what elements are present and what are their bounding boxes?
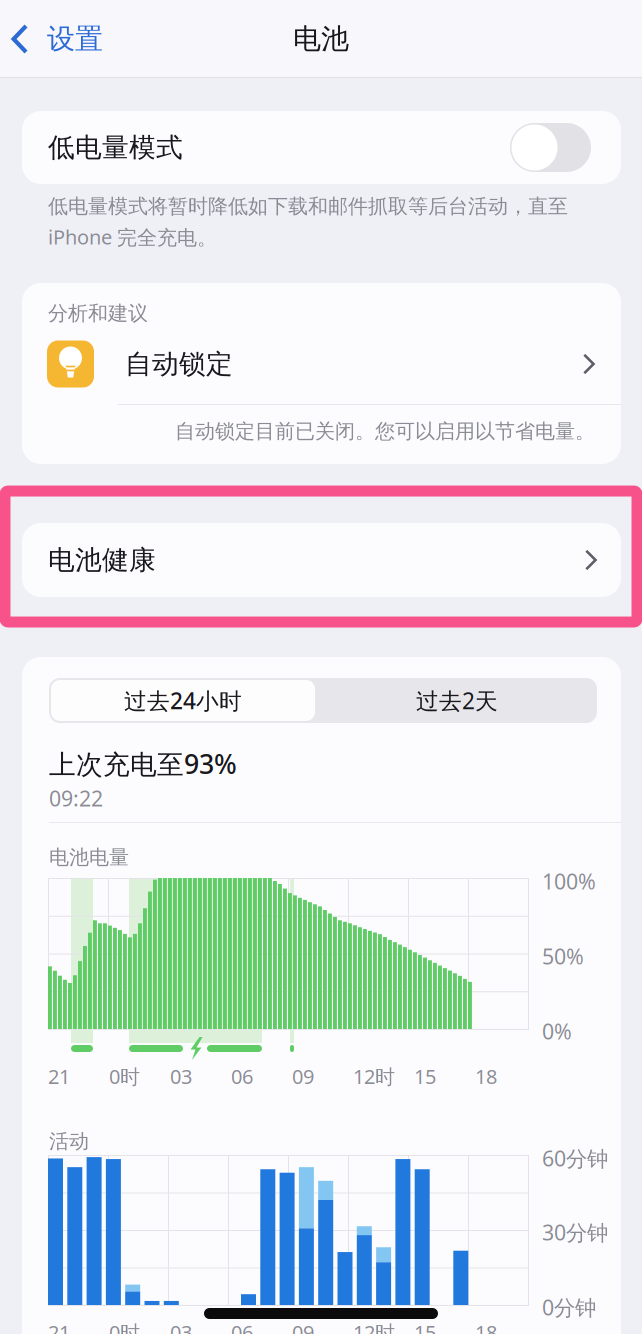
staticText: 分析和建议 bbox=[48, 301, 148, 326]
staticText: 12时 bbox=[353, 1063, 395, 1090]
staticText: 60分钟 bbox=[542, 1144, 608, 1172]
staticText: 上次充电至93% bbox=[49, 746, 237, 781]
staticText: 0分钟 bbox=[542, 1293, 596, 1321]
staticText: 09:22 bbox=[49, 784, 103, 812]
staticText: 09 bbox=[292, 1063, 314, 1090]
staticText: 电池 bbox=[293, 22, 349, 56]
staticText: 活动 bbox=[49, 1129, 89, 1154]
staticText: 过去2天 bbox=[416, 685, 498, 715]
staticText: 15 bbox=[414, 1063, 436, 1090]
button[interactable]: 低电量模式 bbox=[22, 111, 621, 184]
staticText: 21 bbox=[48, 1319, 70, 1334]
button[interactable]: 电池健康 bbox=[22, 523, 621, 597]
staticText: 03 bbox=[170, 1319, 192, 1334]
staticText: 电池电量 bbox=[49, 845, 129, 870]
staticText: 设置 bbox=[47, 22, 103, 56]
staticText: 50% bbox=[542, 942, 584, 970]
staticText: 过去24小时 bbox=[124, 685, 242, 715]
button[interactable]: 自动锁定 bbox=[22, 283, 621, 355]
staticText: 0时 bbox=[109, 1063, 140, 1090]
staticText: 自动锁定目前已关闭。您可以启用以节省电量。 bbox=[175, 419, 595, 444]
staticText: iPhone 完全充电。 bbox=[48, 224, 217, 250]
staticText: 18 bbox=[475, 1319, 497, 1334]
staticText: 低电量模式将暂时降低如下载和邮件抓取等后台活动，直至 bbox=[48, 194, 568, 219]
staticText: 15 bbox=[414, 1319, 436, 1334]
staticText: 电池健康 bbox=[48, 544, 156, 576]
staticText: 21 bbox=[48, 1063, 70, 1090]
button[interactable]: 设置 bbox=[0, 0, 200, 78]
staticText: 低电量模式 bbox=[48, 131, 183, 164]
staticText: 06 bbox=[231, 1319, 253, 1334]
staticText: 自动锁定 bbox=[125, 348, 233, 380]
staticText: 09 bbox=[292, 1319, 314, 1334]
staticText: 12时 bbox=[353, 1319, 395, 1334]
staticText: 06 bbox=[231, 1063, 253, 1090]
staticText: 03 bbox=[170, 1063, 192, 1090]
staticText: 30分钟 bbox=[542, 1218, 608, 1246]
staticText: 0% bbox=[542, 1017, 572, 1045]
button[interactable]: 过去24小时 bbox=[49, 678, 313, 719]
staticText: 100% bbox=[542, 867, 596, 895]
staticText: 0时 bbox=[109, 1319, 140, 1334]
staticText: 18 bbox=[475, 1063, 497, 1090]
button[interactable]: 过去2天 bbox=[49, 678, 325, 719]
